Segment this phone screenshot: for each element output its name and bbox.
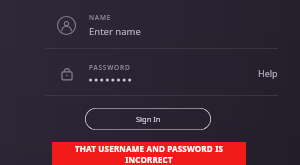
- staticText: Enter name: [89, 25, 141, 38]
- staticText: Help: [258, 67, 278, 79]
- other: User name: [57, 16, 76, 35]
- button[interactable]: Password: [0, 56, 300, 90]
- staticText: Sign In: [136, 114, 161, 124]
- other: Password: [58, 64, 76, 82]
- button[interactable]: Help: [252, 63, 284, 83]
- button[interactable]: THAT USERNAME AND PASSWORD IS INCORRECT: [52, 142, 246, 165]
- button[interactable]: User name: [0, 8, 300, 42]
- staticText: THAT USERNAME AND PASSWORD IS INCORRECT: [52, 143, 246, 165]
- button[interactable]: Sign In: [85, 108, 211, 130]
- staticText: NAME: [89, 13, 112, 22]
- staticText: PASSWORD: [89, 63, 131, 72]
